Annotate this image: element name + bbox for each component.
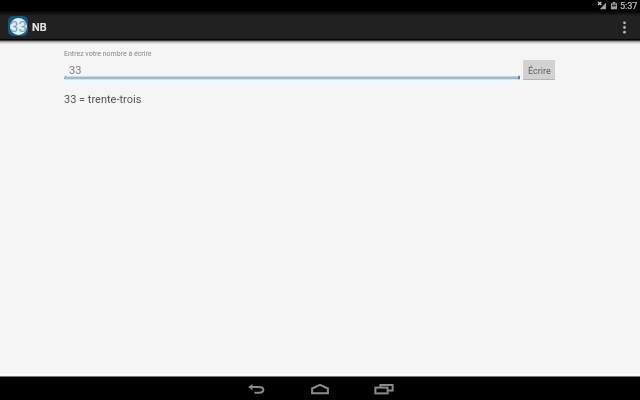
- button[interactable]: Écrire: [523, 60, 555, 80]
- button[interactable]: Home: [288, 379, 352, 399]
- staticText: Écrire: [528, 66, 551, 77]
- staticText: 33: [10, 18, 27, 35]
- button[interactable]: Recent apps: [352, 379, 416, 399]
- staticText: Entrez votre nombre à écrire: [64, 50, 152, 58]
- button[interactable]: More options: [608, 16, 640, 39]
- staticText: NB: [32, 21, 47, 34]
- staticText: 33 = trente-trois: [64, 93, 142, 106]
- button[interactable]: Back: [224, 379, 288, 399]
- staticText: 33: [69, 64, 82, 77]
- staticText: 5:37: [620, 1, 638, 12]
